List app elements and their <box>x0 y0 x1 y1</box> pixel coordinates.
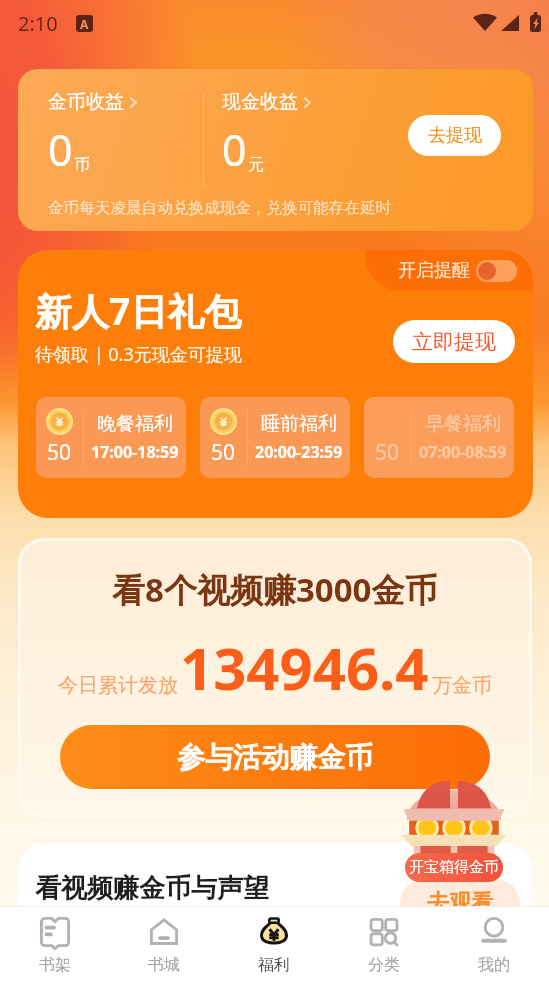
staticText: 参与活动赚金币 <box>177 740 373 775</box>
staticText: 元 <box>248 155 264 175</box>
staticText: 看视频赚金币与声望 <box>35 872 269 905</box>
button[interactable]: 开宝箱得金币 <box>398 778 510 882</box>
staticText: 50 <box>375 438 400 467</box>
staticText: A <box>80 16 89 32</box>
staticText: 2:10 <box>18 10 58 36</box>
button[interactable]: 看视频赚金币与声望 <box>18 843 532 907</box>
button[interactable]: 分类 <box>329 907 439 982</box>
staticText: 币 <box>74 155 90 175</box>
button[interactable]: 福利 <box>219 907 329 982</box>
staticText: 早餐福利 <box>425 412 501 436</box>
staticText: 书架 <box>39 955 71 975</box>
button[interactable]: 50 <box>364 397 514 478</box>
staticText: 待领取 | 0.3元现金可提现 <box>35 342 242 367</box>
staticText: 去观看 <box>427 889 493 907</box>
staticText: 看8个视频赚3000金币 <box>112 567 438 612</box>
staticText: 分类 <box>368 955 400 975</box>
staticText: 立即提现 <box>412 329 496 355</box>
staticText: 0 <box>222 120 247 179</box>
staticText: 50 <box>211 438 236 467</box>
staticText: 福利 <box>258 955 290 975</box>
staticText: 17:00-18:59 <box>91 441 179 463</box>
staticText: 0 <box>48 120 73 179</box>
staticText: 去提现 <box>428 124 482 147</box>
button[interactable]: 书城 <box>109 907 219 982</box>
staticText: 万金币 <box>432 673 492 698</box>
staticText: 金币每天凌晨自动兑换成现金，兑换可能存在延时 <box>48 198 392 218</box>
staticText: 今日累计发放 <box>58 673 178 698</box>
staticText: 新人7日礼包 <box>35 285 242 336</box>
other: 开启提醒 <box>476 260 517 282</box>
staticText: 金币收益 <box>48 90 124 114</box>
button[interactable]: 我的 <box>439 907 549 982</box>
staticText: 开启提醒 <box>398 259 470 282</box>
staticText: 书城 <box>148 955 180 975</box>
staticText: 134946.4 <box>180 628 429 707</box>
button[interactable]: 50 <box>200 397 350 478</box>
button[interactable]: 去提现 <box>408 115 501 156</box>
staticText: 20:00-23:59 <box>255 441 343 463</box>
staticText: 睡前福利 <box>261 412 337 436</box>
staticText: 07:00-08:59 <box>419 441 507 463</box>
button[interactable]: 金币收益 <box>18 69 533 231</box>
button[interactable]: 书架 <box>0 907 109 982</box>
staticText: 现金收益 <box>222 90 298 114</box>
staticText: 开宝箱得金币 <box>409 858 499 877</box>
button[interactable]: 开启提醒 <box>365 250 533 291</box>
button[interactable]: 50 <box>36 397 186 478</box>
button[interactable]: 立即提现 <box>393 320 515 363</box>
staticText: 我的 <box>478 955 510 975</box>
button[interactable]: 参与活动赚金币 <box>60 725 490 789</box>
staticText: 50 <box>47 438 72 467</box>
staticText: 晚餐福利 <box>97 412 173 436</box>
